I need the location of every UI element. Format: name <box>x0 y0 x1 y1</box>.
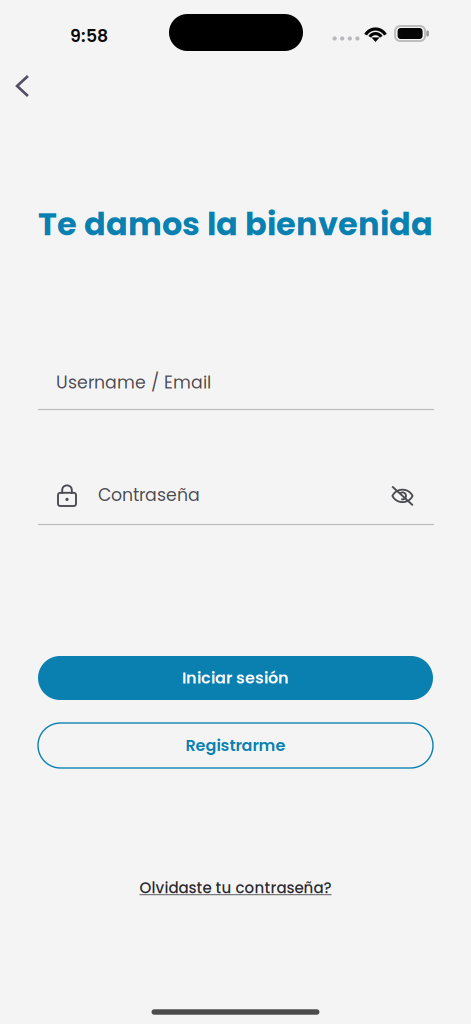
staticText: Registrarme <box>185 734 285 757</box>
staticText: Olvidaste tu contraseña? <box>139 877 331 899</box>
button[interactable]: Back <box>0 64 44 108</box>
staticText: Contraseña <box>98 483 200 507</box>
staticText: 9:58 <box>70 24 108 48</box>
button[interactable]: Iniciar sesión <box>38 656 433 700</box>
staticText: Iniciar sesión <box>182 667 289 689</box>
staticText: Username / Email <box>56 370 211 395</box>
button[interactable]: Olvidaste tu contraseña? <box>139 875 331 901</box>
button[interactable]: Registrarme <box>38 723 433 768</box>
button[interactable]: Show password <box>382 476 422 516</box>
staticText: Te damos la bienvenida <box>38 202 433 246</box>
